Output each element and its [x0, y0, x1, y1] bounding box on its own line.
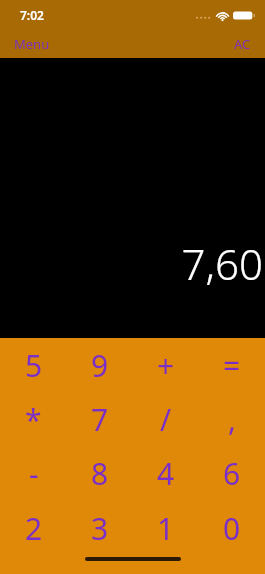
staticText: +: [157, 345, 175, 386]
staticText: -: [29, 453, 39, 494]
button[interactable]: -: [0, 446, 67, 501]
button[interactable]: 0: [199, 501, 265, 556]
staticText: 7,60: [181, 235, 263, 292]
staticText: 2: [25, 508, 43, 549]
staticText: AC: [234, 35, 251, 53]
button[interactable]: 2: [0, 501, 67, 556]
button[interactable]: 9: [67, 338, 133, 392]
staticText: /: [160, 399, 172, 440]
staticText: *: [25, 399, 42, 440]
staticText: 6: [223, 453, 241, 494]
staticText: 3: [91, 508, 109, 549]
staticText: 7: [91, 399, 109, 440]
button[interactable]: 4: [133, 446, 199, 501]
button[interactable]: *: [0, 392, 67, 446]
staticText: 1: [157, 508, 175, 549]
button[interactable]: ,: [199, 392, 265, 446]
staticText: 5: [25, 345, 43, 386]
staticText: 9: [91, 345, 109, 386]
staticText: 7:02: [20, 7, 44, 23]
button[interactable]: /: [133, 392, 199, 446]
button[interactable]: AC: [224, 31, 265, 57]
button[interactable]: 5: [0, 338, 67, 392]
button[interactable]: 3: [67, 501, 133, 556]
button[interactable]: 7: [67, 392, 133, 446]
button[interactable]: Menu: [0, 31, 60, 57]
staticText: 4: [157, 453, 175, 494]
button[interactable]: =: [199, 338, 265, 392]
staticText: =: [223, 345, 241, 386]
button[interactable]: +: [133, 338, 199, 392]
other: Home indicator: [85, 557, 181, 561]
staticText: Menu: [14, 35, 50, 53]
staticText: ,: [228, 399, 237, 440]
button[interactable]: 1: [133, 501, 199, 556]
button[interactable]: 6: [199, 446, 265, 501]
staticText: 0: [223, 508, 241, 549]
staticText: 8: [91, 453, 109, 494]
button[interactable]: 8: [67, 446, 133, 501]
